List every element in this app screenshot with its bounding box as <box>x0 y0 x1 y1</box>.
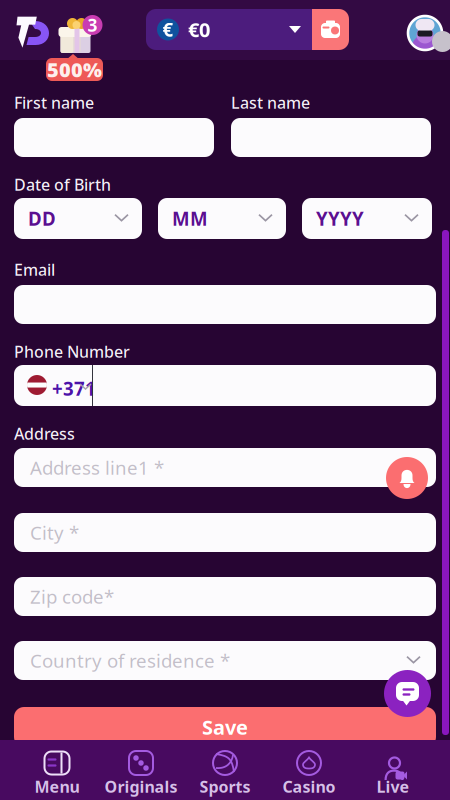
button[interactable]: Save <box>14 707 436 747</box>
staticText: Save <box>202 714 248 740</box>
button[interactable]: YYYY <box>302 198 432 239</box>
staticText: Sports <box>199 776 250 797</box>
staticText: €0 <box>188 16 210 43</box>
staticText: DD <box>28 206 56 231</box>
button[interactable]: City * <box>14 513 436 552</box>
staticText: Originals <box>104 776 177 797</box>
staticText: Last name <box>231 92 310 113</box>
staticText: Phone Number <box>14 341 130 362</box>
staticText: YYYY <box>316 206 364 231</box>
staticText: Email <box>14 259 55 280</box>
staticText: City * <box>30 520 79 545</box>
button[interactable] <box>386 457 428 499</box>
button[interactable] <box>14 285 436 324</box>
button[interactable]: Address line1 * <box>14 448 436 487</box>
staticText: First name <box>14 92 94 113</box>
button[interactable]: Zip code* <box>14 577 436 616</box>
staticText: 500% <box>47 56 102 83</box>
staticText: Live <box>376 776 409 797</box>
staticText: Address <box>14 423 75 444</box>
button[interactable]: Sports <box>183 740 267 800</box>
button[interactable]: Country of residence * <box>14 641 436 680</box>
button[interactable]: € <box>146 9 349 50</box>
button[interactable]: Originals <box>99 740 183 800</box>
staticText: +371 <box>52 376 96 401</box>
button[interactable]: DD <box>14 198 142 239</box>
staticText: Address line1 * <box>30 455 164 480</box>
button[interactable]: Menu <box>15 740 99 800</box>
staticText: Casino <box>282 776 335 797</box>
staticText: Country of residence * <box>30 648 230 673</box>
staticText: Date of Birth <box>14 174 111 195</box>
button[interactable]: MM <box>158 198 286 239</box>
staticText: Menu <box>34 776 79 797</box>
button[interactable]: Casino <box>267 740 351 800</box>
button[interactable]: Live <box>351 740 435 800</box>
staticText: € <box>162 17 173 42</box>
button[interactable]: 3 <box>52 8 98 48</box>
staticText: MM <box>172 206 208 231</box>
button[interactable] <box>400 11 448 51</box>
button[interactable] <box>384 670 431 717</box>
staticText: Zip code* <box>30 584 114 609</box>
button[interactable] <box>14 118 214 157</box>
staticText: 3 <box>87 13 97 36</box>
button[interactable]: +371 <box>14 365 436 406</box>
button[interactable] <box>231 118 431 157</box>
